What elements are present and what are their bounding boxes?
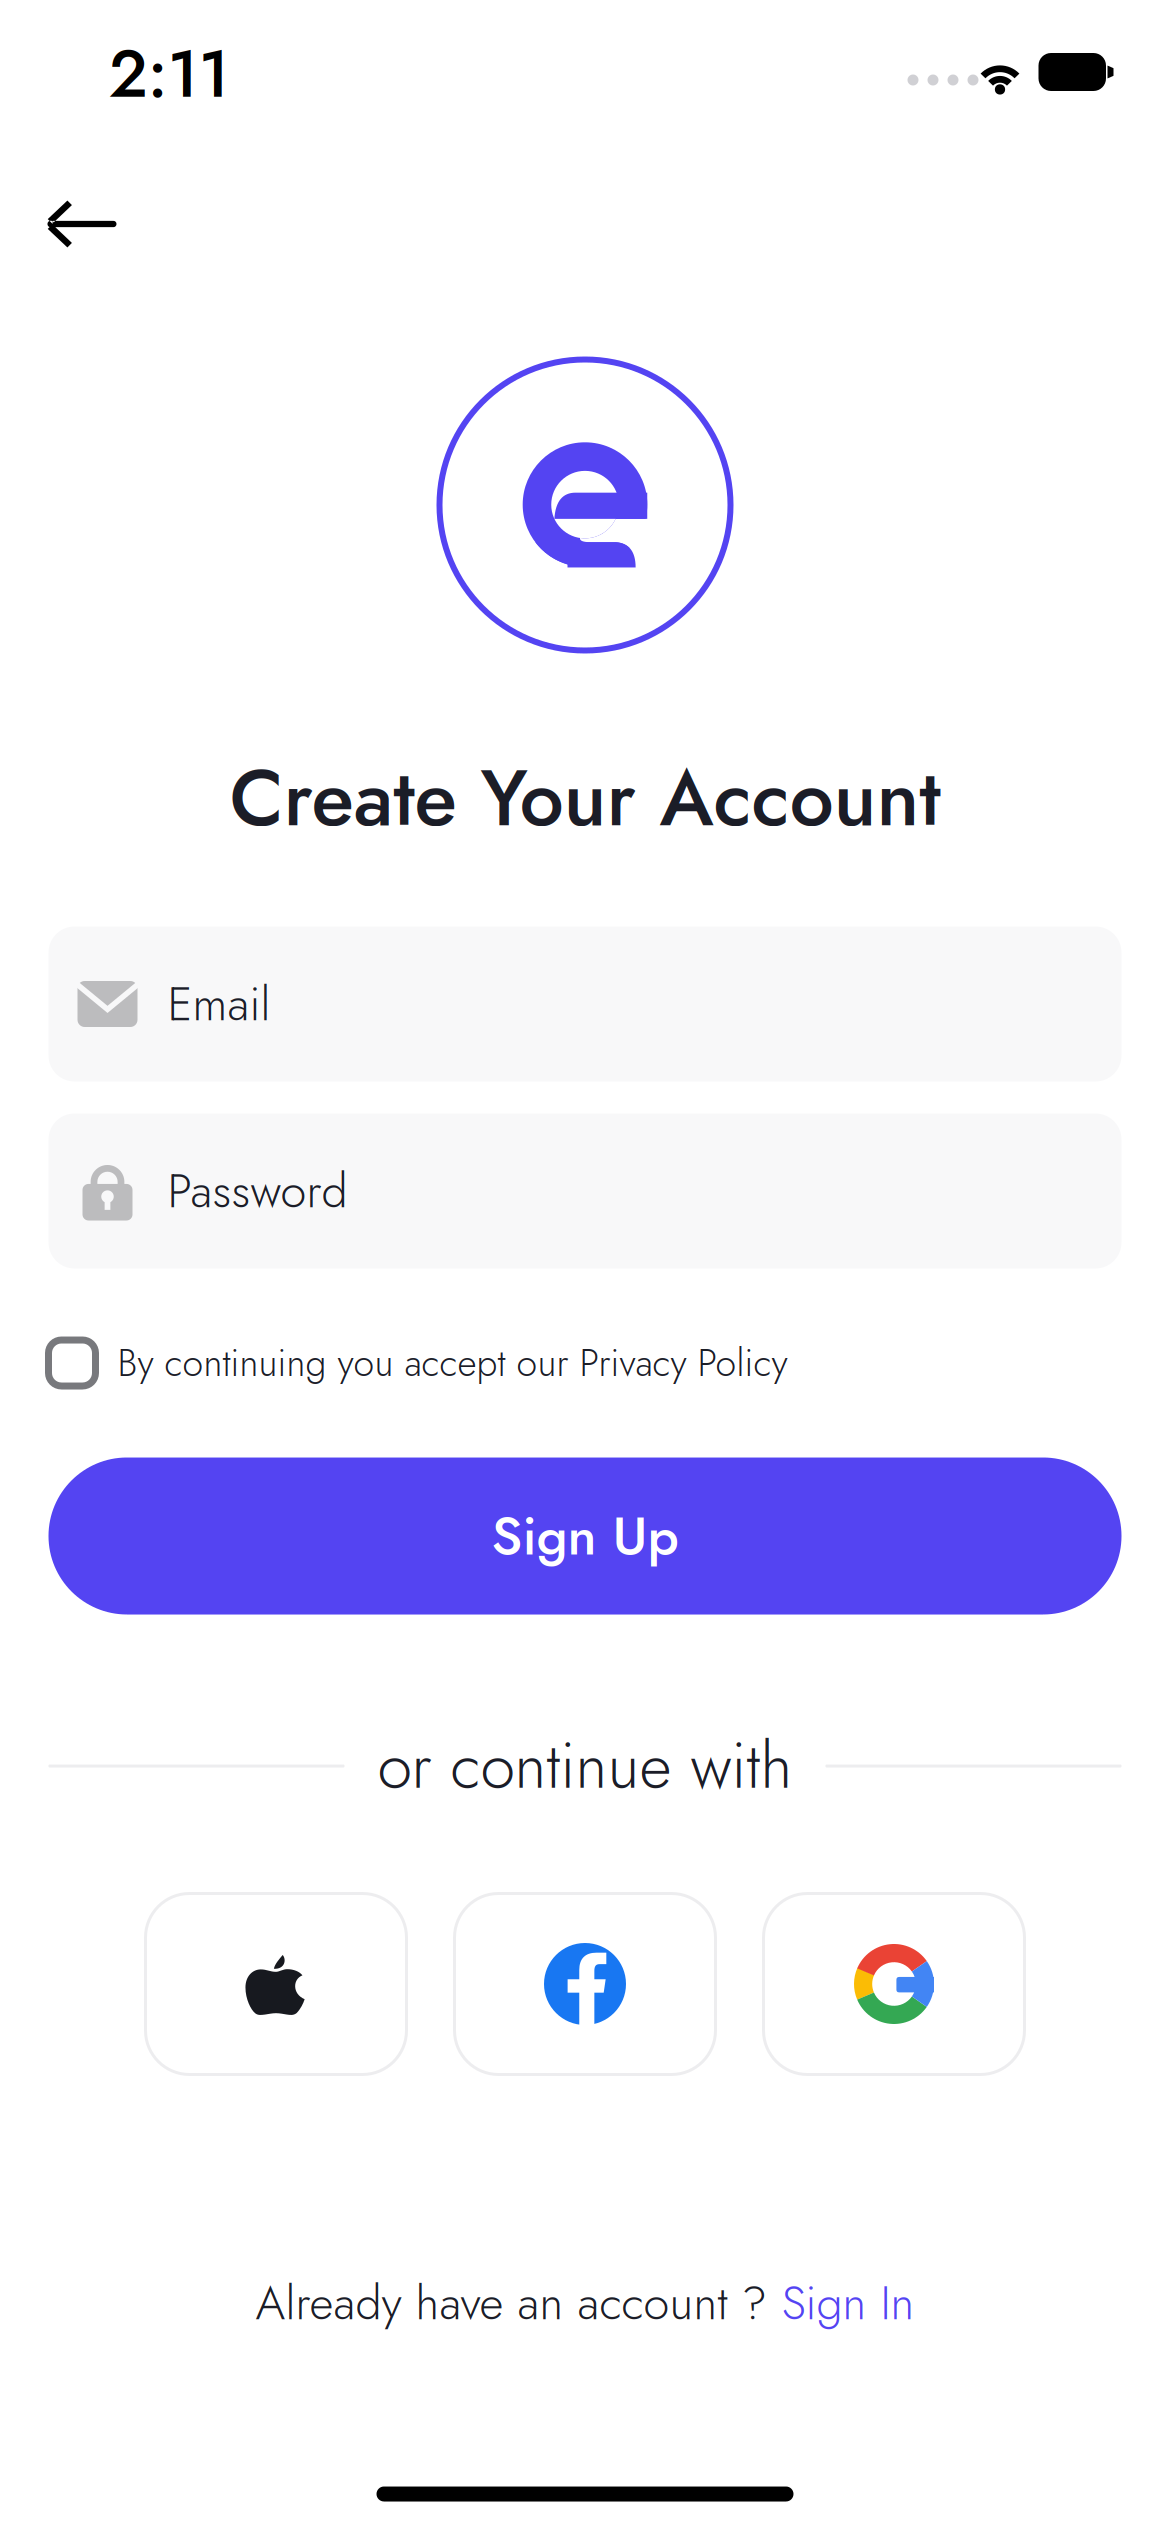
staticText: Already have an account ? — [255, 2269, 781, 2337]
button[interactable]: Back — [13, 164, 153, 284]
staticText: Password — [167, 1157, 347, 1225]
button[interactable]: Sign Up — [48, 1457, 1121, 1614]
button[interactable]: Continue with Apple — [145, 1893, 406, 2074]
staticText: Sign Up — [491, 1497, 678, 1575]
staticText: Email — [167, 970, 270, 1038]
staticText: 2:11 — [108, 27, 229, 121]
button[interactable]: Email — [48, 926, 1121, 1081]
button[interactable]: Password — [48, 1113, 1121, 1268]
button[interactable]: Continue with Facebook — [454, 1893, 715, 2074]
button[interactable]: Continue with Google — [763, 1893, 1024, 2074]
button[interactable]: Sign In — [781, 2269, 914, 2337]
staticText: or continue with — [377, 1721, 792, 1811]
staticText: Sign In — [781, 2269, 914, 2337]
staticText: By continuing you accept our Privacy Pol… — [117, 1336, 787, 1390]
button[interactable]: By continuing you accept our Privacy Pol… — [48, 1333, 1121, 1393]
staticText: Create Your Account — [229, 741, 940, 855]
